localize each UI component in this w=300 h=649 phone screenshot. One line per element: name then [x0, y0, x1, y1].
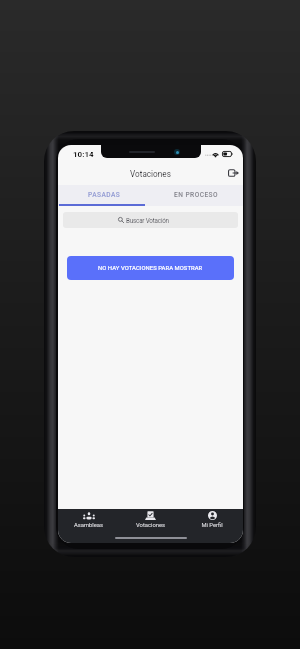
button[interactable]: Votaciones	[119, 509, 181, 531]
staticText: 10:14	[73, 150, 94, 159]
staticText: NO HAY VOTACIONES PARA MOSTRAR	[98, 265, 203, 272]
staticText: Votaciones	[136, 522, 165, 529]
button[interactable]: Buscar Votación	[63, 212, 238, 228]
staticText: Asambleas	[74, 522, 103, 529]
button[interactable]: PASADAS	[58, 185, 150, 206]
button[interactable]: Cerrar sesión	[224, 164, 242, 182]
button[interactable]: NO HAY VOTACIONES PARA MOSTRAR	[67, 256, 234, 280]
button[interactable]: Mi Perfil	[181, 509, 243, 531]
staticText: Votaciones	[130, 169, 171, 179]
staticText: PASADAS	[88, 191, 121, 199]
staticText: EN PROCESO	[174, 191, 219, 199]
button[interactable]: EN PROCESO	[150, 185, 243, 206]
button[interactable]: Asambleas	[58, 509, 119, 531]
staticText: Buscar Votación	[126, 217, 169, 224]
staticText: Mi Perfil	[201, 522, 223, 529]
